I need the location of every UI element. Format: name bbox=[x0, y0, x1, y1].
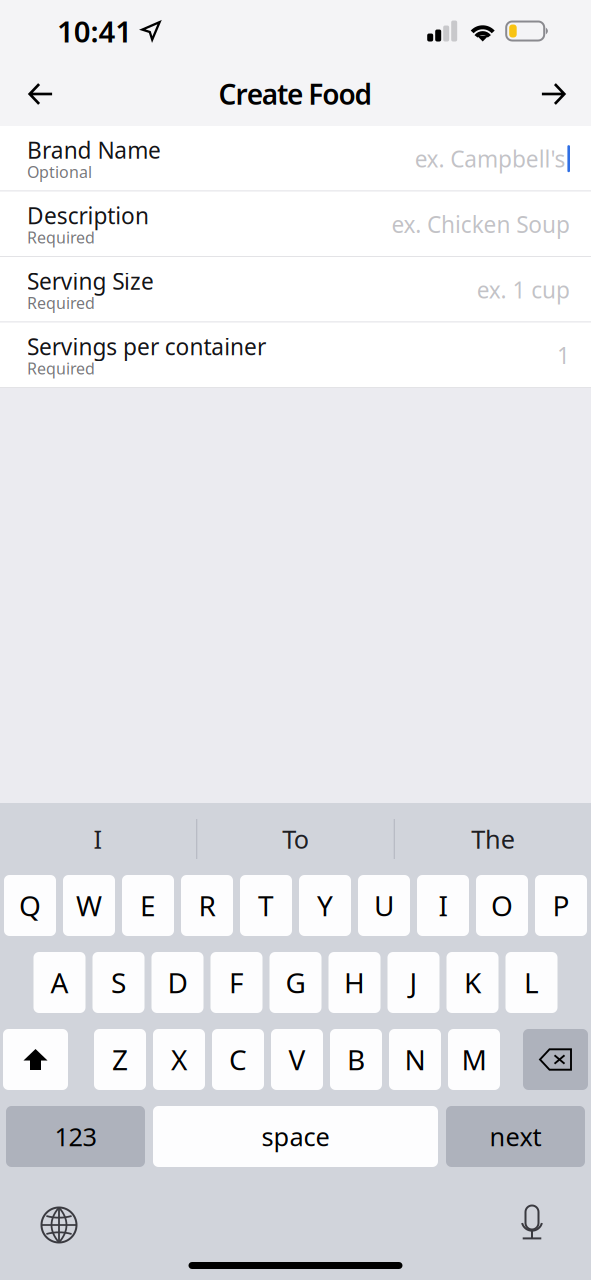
button[interactable]: The bbox=[395, 803, 591, 875]
staticText: Serving Size bbox=[27, 266, 154, 296]
staticText: L bbox=[524, 964, 539, 1001]
staticText: Required bbox=[27, 292, 95, 313]
button[interactable]: G bbox=[269, 952, 321, 1013]
button[interactable]: A bbox=[33, 952, 85, 1013]
button[interactable]: Shift bbox=[3, 1029, 68, 1090]
staticText: Y bbox=[317, 887, 333, 924]
staticText: I bbox=[93, 822, 102, 856]
staticText: A bbox=[50, 964, 68, 1001]
staticText: M bbox=[461, 1041, 486, 1078]
staticText: next bbox=[489, 1120, 541, 1153]
button[interactable]: X bbox=[153, 1029, 205, 1090]
staticText: H bbox=[344, 964, 365, 1001]
button[interactable]: space bbox=[153, 1106, 438, 1167]
button[interactable]: L bbox=[505, 952, 557, 1013]
staticText: O bbox=[491, 887, 513, 924]
button[interactable]: T bbox=[240, 875, 292, 936]
staticText: G bbox=[285, 964, 305, 1001]
staticText: B bbox=[347, 1041, 365, 1078]
button[interactable]: F bbox=[210, 952, 262, 1013]
button[interactable]: Servings per container bbox=[0, 322, 591, 387]
button[interactable]: R bbox=[181, 875, 233, 936]
button[interactable]: Switch keyboard bbox=[28, 1183, 90, 1267]
button[interactable]: Continue bbox=[521, 62, 585, 126]
button[interactable]: S bbox=[92, 952, 144, 1013]
button[interactable]: N bbox=[389, 1029, 441, 1090]
staticText: space bbox=[261, 1120, 329, 1153]
staticText: S bbox=[111, 964, 126, 1001]
staticText: ex. 1 cup bbox=[477, 275, 570, 305]
staticText: Required bbox=[27, 358, 95, 379]
button[interactable]: I bbox=[417, 875, 469, 936]
staticText: P bbox=[552, 887, 569, 924]
staticText: Q bbox=[19, 887, 41, 924]
staticText: To bbox=[282, 822, 309, 856]
button[interactable]: J bbox=[387, 952, 439, 1013]
staticText: Brand Name bbox=[27, 135, 161, 165]
button[interactable]: P bbox=[535, 875, 587, 936]
button[interactable]: Z bbox=[94, 1029, 146, 1090]
staticText: W bbox=[76, 887, 102, 924]
staticText: C bbox=[229, 1041, 247, 1078]
button[interactable]: C bbox=[212, 1029, 264, 1090]
button[interactable]: To bbox=[197, 803, 394, 875]
staticText: E bbox=[140, 887, 156, 924]
staticText: U bbox=[374, 887, 394, 924]
staticText: ex. Campbell's bbox=[415, 144, 565, 174]
staticText: F bbox=[229, 964, 244, 1001]
button[interactable]: Dictation bbox=[501, 1183, 563, 1267]
staticText: The bbox=[471, 822, 515, 856]
button[interactable]: Brand Name bbox=[0, 126, 591, 190]
staticText: N bbox=[404, 1041, 425, 1078]
button[interactable]: V bbox=[271, 1029, 323, 1090]
staticText: Create Food bbox=[218, 75, 372, 113]
button[interactable]: Serving Size bbox=[0, 257, 591, 321]
staticText: J bbox=[409, 964, 417, 1001]
button[interactable]: W bbox=[63, 875, 115, 936]
staticText: Optional bbox=[27, 161, 92, 182]
staticText: Z bbox=[112, 1041, 128, 1078]
staticText: 123 bbox=[54, 1120, 96, 1153]
button[interactable]: 123 bbox=[6, 1106, 145, 1167]
button[interactable]: I bbox=[0, 803, 196, 875]
button[interactable]: next bbox=[446, 1106, 585, 1167]
staticText: T bbox=[258, 887, 274, 924]
button[interactable]: O bbox=[476, 875, 528, 936]
staticText: 10:41 bbox=[57, 11, 132, 50]
button[interactable]: Back bbox=[9, 62, 73, 126]
button[interactable]: K bbox=[446, 952, 498, 1013]
button[interactable]: D bbox=[151, 952, 203, 1013]
button[interactable]: U bbox=[358, 875, 410, 936]
staticText: X bbox=[171, 1041, 187, 1078]
staticText: D bbox=[167, 964, 187, 1001]
button[interactable]: B bbox=[330, 1029, 382, 1090]
staticText: Servings per container bbox=[27, 331, 266, 362]
button[interactable]: H bbox=[328, 952, 380, 1013]
staticText: V bbox=[288, 1041, 305, 1078]
button[interactable]: Y bbox=[299, 875, 351, 936]
staticText: K bbox=[464, 964, 481, 1001]
staticText: Required bbox=[27, 227, 95, 248]
button[interactable]: Delete bbox=[523, 1029, 588, 1090]
staticText: R bbox=[198, 887, 215, 924]
button[interactable]: Q bbox=[4, 875, 56, 936]
staticText: 1 bbox=[557, 340, 570, 370]
staticText: ex. Chicken Soup bbox=[391, 209, 570, 239]
staticText: I bbox=[438, 887, 447, 924]
button[interactable]: M bbox=[448, 1029, 500, 1090]
button[interactable]: E bbox=[122, 875, 174, 936]
button[interactable]: Description bbox=[0, 191, 591, 256]
staticText: Description bbox=[27, 200, 149, 231]
